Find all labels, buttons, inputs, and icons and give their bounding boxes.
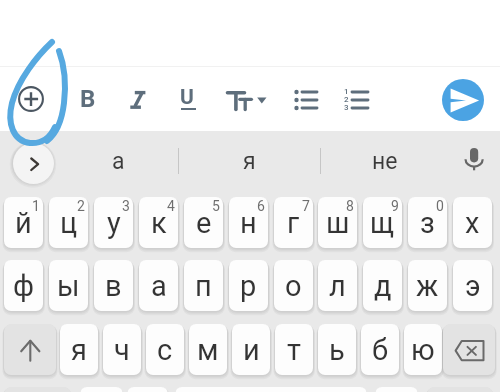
staticText: ю [411,333,435,367]
button[interactable]: ц [49,197,88,248]
staticText: 2 [77,198,85,214]
staticText: B [80,85,96,113]
button[interactable]: г [274,197,313,248]
button[interactable]: е [184,197,223,248]
button[interactable]: я [60,324,98,375]
button[interactable]: Emoji [127,387,168,392]
staticText: ж [416,269,439,303]
button[interactable]: э [453,260,492,311]
staticText: 5 [212,198,220,214]
staticText: о [285,269,302,303]
button[interactable]: ф [4,260,43,311]
staticText: м [197,333,219,367]
button[interactable]: Text style [222,79,274,119]
button[interactable]: т [275,324,313,375]
button[interactable]: р [229,260,268,311]
button[interactable]: о [274,260,313,311]
button[interactable]: Underline [168,79,208,119]
button[interactable]: Send [442,79,484,121]
button[interactable]: не [340,131,430,191]
button[interactable]: Bulleted list [286,79,326,119]
staticText: 1 [32,198,40,214]
button[interactable]: ь [318,324,356,375]
staticText: я [71,333,87,367]
button[interactable]: Shift [4,324,56,375]
staticText: 3 [122,198,130,214]
button[interactable]: Add attachment [11,79,51,119]
button[interactable]: Show toolbar [13,143,54,184]
staticText: х [465,206,480,240]
staticText: т [287,333,301,367]
button[interactable]: л [318,260,357,311]
button[interactable]: к [139,197,178,248]
button[interactable]: ч [103,324,141,375]
staticText: г [287,206,300,240]
button[interactable]: ш [318,197,357,248]
button[interactable]: Backspace [443,324,495,375]
button[interactable]: ж [408,260,447,311]
button[interactable]: ы [49,260,88,311]
button[interactable]: ю [404,324,442,375]
button[interactable]: а [73,131,163,191]
staticText: н [240,206,257,240]
staticText: й [15,206,32,240]
staticText: ь [329,333,345,367]
staticText: ц [60,206,78,240]
staticText: а [151,269,167,303]
staticText: э [465,269,481,303]
button[interactable]: B [68,79,108,119]
staticText: U [180,85,194,110]
staticText: щ [370,206,395,240]
button[interactable]: х [453,197,492,248]
staticText: л [329,269,346,303]
staticText: ф [13,269,35,303]
button[interactable]: Period [375,387,418,392]
staticText: 6 [257,198,265,214]
staticText: 8 [346,198,354,214]
staticText: и [243,333,260,367]
button[interactable]: и [232,324,270,375]
staticText: 9 [391,198,399,214]
button[interactable]: с [146,324,184,375]
button[interactable]: п [184,260,223,311]
button[interactable]: Comma [80,387,123,392]
staticText: р [240,269,257,303]
staticText: ы [57,269,80,303]
button[interactable]: з [408,197,447,248]
button[interactable]: н [229,197,268,248]
staticText: з [420,206,435,240]
staticText: б [372,333,389,367]
staticText: ч [114,333,130,367]
staticText: а [112,148,125,175]
staticText: я [243,148,256,175]
staticText: с [157,333,173,367]
button[interactable]: а [139,260,178,311]
button[interactable]: в [94,260,133,311]
button[interactable]: Voice input [454,141,494,181]
button[interactable]: щ [363,197,402,248]
button[interactable]: у [94,197,133,248]
staticText: не [372,148,398,175]
staticText: д [374,269,392,303]
button[interactable]: м [189,324,227,375]
button[interactable]: я [204,131,294,191]
staticText: 2 [344,95,349,104]
button[interactable]: д [363,260,402,311]
staticText: 7 [302,198,310,214]
button[interactable]: Italic [117,79,157,119]
staticText: п [195,269,212,303]
button[interactable]: б [361,324,399,375]
button[interactable]: Numbered list [336,79,376,119]
button[interactable]: й [4,197,43,248]
staticText: е [196,206,212,240]
staticText: 4 [167,198,175,214]
staticText: 1 [344,87,349,96]
staticText: у [107,206,121,240]
staticText: к [151,206,167,240]
staticText: 3 [344,103,349,112]
staticText: ш [326,206,350,240]
staticText: в [105,269,122,303]
